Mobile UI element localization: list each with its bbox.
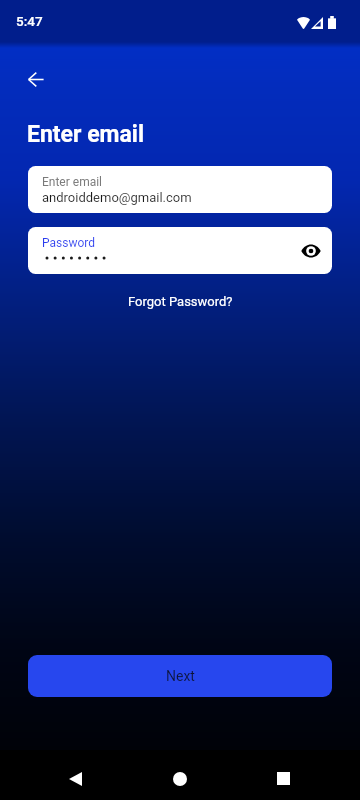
staticText: Enter email: [42, 175, 103, 189]
button[interactable]: Forgot Password?: [120, 290, 241, 313]
staticText: Password: [42, 236, 96, 250]
button[interactable]: Home: [164, 763, 196, 795]
button[interactable]: Show password: [297, 237, 325, 265]
button[interactable]: Password: [28, 227, 332, 274]
button[interactable]: Back: [18, 61, 54, 97]
button[interactable]: Enter email: [28, 166, 332, 213]
staticText: Next: [166, 668, 195, 684]
staticText: androiddemo@gmail.com: [42, 190, 192, 205]
button[interactable]: Back: [60, 763, 91, 794]
button[interactable]: Recent apps: [268, 763, 299, 794]
staticText: Enter email: [27, 121, 145, 148]
staticText: 5:47: [16, 13, 43, 29]
button[interactable]: Next: [28, 655, 332, 697]
